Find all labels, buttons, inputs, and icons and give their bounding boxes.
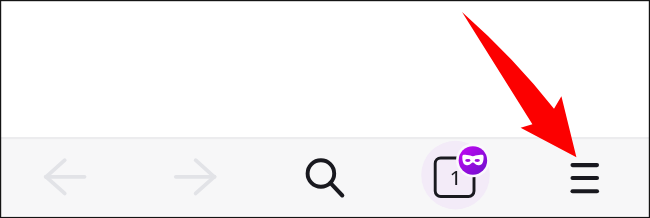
staticText: 1 [447,164,464,188]
button[interactable]: Search [288,138,354,208]
button[interactable]: More options [552,142,618,208]
button[interactable]: Back [32,142,98,208]
button[interactable]: Forward [162,142,228,208]
button[interactable]: Tabs: 1 open, incognito [421,137,491,209]
